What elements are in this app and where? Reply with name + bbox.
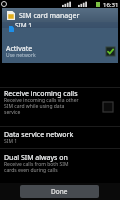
staticText: 16:31 xyxy=(103,1,119,9)
staticText: Use network xyxy=(6,52,36,59)
staticText: SIM 1 xyxy=(4,138,18,145)
staticText: Receive incoming calls xyxy=(4,89,78,99)
button[interactable]: Done xyxy=(20,185,99,198)
staticText: Receive incoming calls via other SIM car… xyxy=(4,97,81,116)
staticText: Receive calls from both SIM cards even d… xyxy=(4,161,81,174)
staticText: Activate xyxy=(6,44,33,54)
button[interactable]: SIM card manager xyxy=(2,8,118,22)
staticText: Dual SIM always on xyxy=(4,153,68,163)
button[interactable]: Activate checkbox xyxy=(106,47,115,56)
button[interactable]: Data service network xyxy=(0,127,120,148)
button[interactable]: SIM 1 xyxy=(2,22,118,28)
staticText: SIM 1 xyxy=(15,21,33,27)
button[interactable]: Receive incoming calls xyxy=(0,88,120,126)
staticText: Done xyxy=(51,187,68,196)
staticText: SIM card manager xyxy=(19,11,80,21)
button[interactable]: Receive incoming calls checkbox xyxy=(103,102,113,112)
button[interactable]: Dual SIM always on xyxy=(0,149,120,177)
staticText: Data service network xyxy=(4,130,74,140)
